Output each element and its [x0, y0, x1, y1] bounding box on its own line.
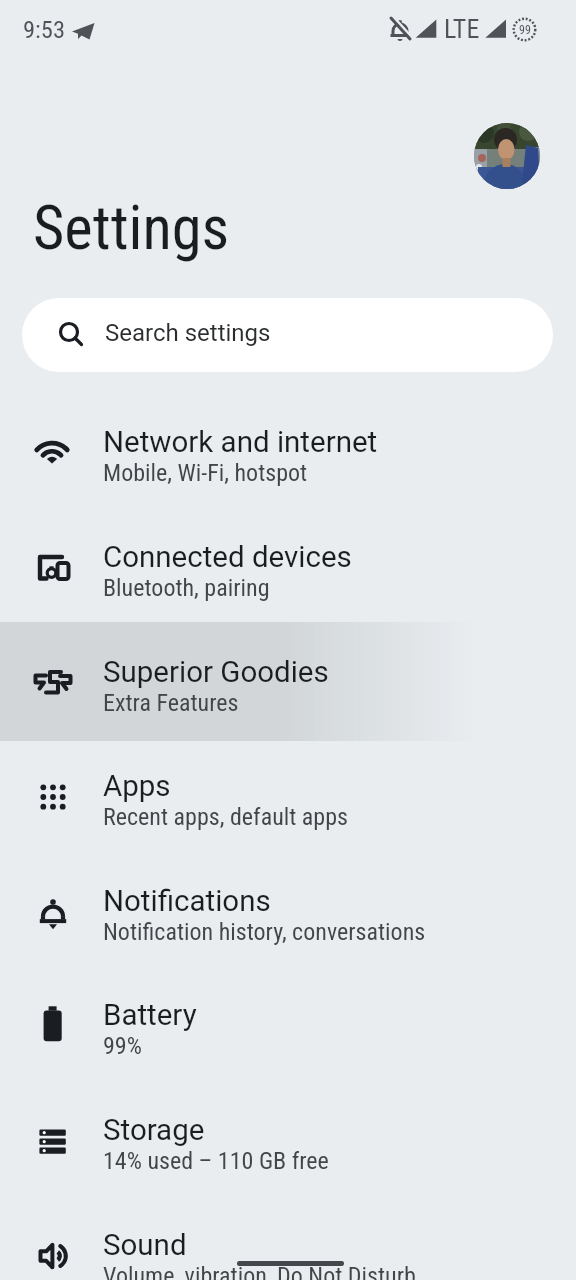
button[interactable]: Sound — [0, 1210, 576, 1280]
staticText: Superior Goodies — [103, 655, 329, 690]
button[interactable]: Network and internet — [0, 407, 576, 522]
staticText: Volume, vibration, Do Not Disturb — [103, 1262, 416, 1280]
button[interactable] — [474, 123, 540, 189]
button[interactable]: Connected devices — [0, 522, 576, 637]
staticText: Extra Features — [103, 689, 239, 717]
staticText: 14% used – 110 GB free — [103, 1147, 329, 1175]
staticText: Notifications — [103, 884, 271, 919]
button[interactable]: Apps — [0, 751, 576, 866]
staticText: Storage — [103, 1113, 205, 1148]
staticText: Battery — [103, 998, 197, 1033]
staticText: Settings — [33, 193, 230, 264]
button[interactable]: Search settings — [22, 298, 553, 372]
button[interactable]: Notifications — [0, 866, 576, 981]
staticText: 99 — [519, 23, 531, 37]
staticText: Apps — [103, 769, 171, 804]
button[interactable]: Battery — [0, 980, 576, 1095]
staticText: Notification history, conversations — [103, 918, 426, 946]
staticText: Recent apps, default apps — [103, 803, 348, 831]
button[interactable]: Storage — [0, 1095, 576, 1210]
staticText: Mobile, Wi-Fi, hotspot — [103, 459, 308, 487]
staticText: 99% — [103, 1032, 142, 1060]
staticText: Sound — [103, 1228, 187, 1263]
button[interactable]: Superior Goodies — [0, 637, 576, 752]
staticText: Bluetooth, pairing — [103, 574, 270, 602]
staticText: LTE — [444, 14, 480, 44]
staticText: 9:53 — [23, 15, 66, 44]
staticText: Search settings — [105, 319, 271, 347]
staticText: Network and internet — [103, 425, 378, 460]
staticText: Connected devices — [103, 540, 352, 575]
